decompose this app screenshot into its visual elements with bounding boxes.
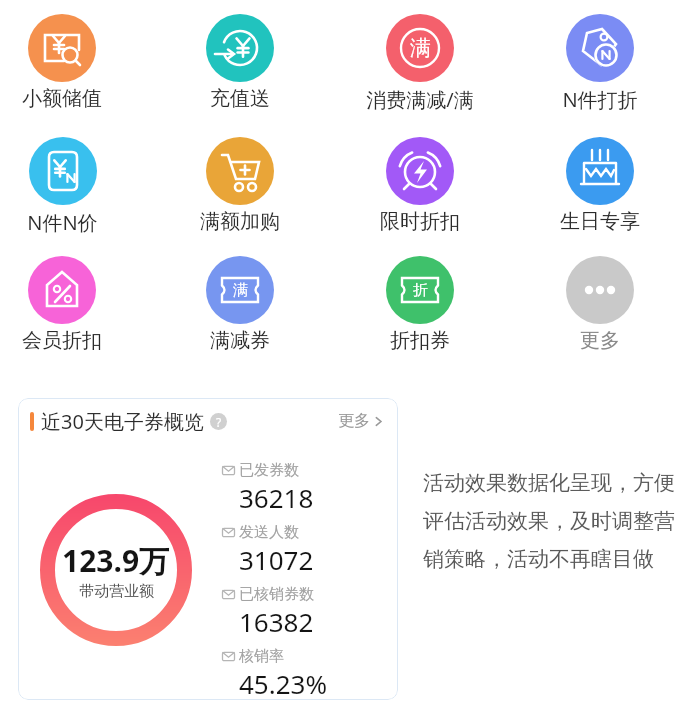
staticText: 生日专享 — [560, 209, 640, 234]
staticText: 充值送 — [210, 86, 270, 111]
button[interactable]: 小额储值 — [4, 14, 120, 114]
staticText: ? — [216, 414, 222, 430]
staticText: 更多 — [338, 411, 370, 431]
staticText: 16382 — [239, 604, 314, 639]
button[interactable]: 折 — [362, 256, 478, 356]
staticText: 折扣券 — [390, 328, 450, 353]
staticText: 123.9万 — [62, 540, 170, 581]
staticText: 消费满减/满送 — [362, 86, 478, 114]
staticText: 满 — [233, 281, 248, 300]
staticText: 折 — [413, 281, 428, 300]
staticText: 小额储值 — [22, 86, 102, 111]
staticText: 会员折扣 — [22, 328, 102, 353]
button[interactable]: 更多 — [338, 411, 384, 431]
button[interactable]: N件N价 — [4, 137, 120, 237]
staticText: 已发券数 — [239, 461, 299, 480]
staticText: 活动效果数据化呈现，方便评估活动效果，及时调整营销策略，活动不再瞎目做 — [423, 470, 675, 573]
staticText: N件N价 — [27, 209, 98, 236]
staticText: N件打折 — [562, 86, 638, 113]
button[interactable]: 满额加购 — [182, 137, 298, 237]
staticText: 发送人数 — [239, 523, 299, 542]
button[interactable]: 限时折扣 — [362, 137, 478, 237]
staticText: 满额加购 — [200, 209, 280, 234]
button[interactable]: 会员折扣 — [4, 256, 120, 356]
button[interactable]: 生日专享 — [542, 137, 658, 237]
staticText: 限时折扣 — [380, 209, 460, 234]
button[interactable]: 帮助 — [210, 413, 227, 430]
staticText: 带动营业额 — [79, 582, 154, 601]
button[interactable]: 更多 — [542, 256, 658, 356]
staticText: 36218 — [239, 480, 314, 515]
staticText: 45.23% — [239, 666, 328, 700]
button[interactable]: 近30天电子券概览 — [18, 398, 398, 700]
staticText: 满 — [410, 35, 431, 61]
staticText: 核销率 — [239, 647, 284, 666]
button[interactable]: N件打折 — [542, 14, 658, 114]
button[interactable]: 满 — [182, 256, 298, 356]
staticText: 近30天电子券概览 — [41, 408, 204, 435]
staticText: 满减券 — [210, 328, 270, 353]
button[interactable]: 满 — [362, 14, 478, 114]
staticText: 31072 — [239, 542, 314, 577]
button[interactable]: 充值送 — [182, 14, 298, 114]
staticText: 已核销券数 — [239, 585, 314, 604]
staticText: 更多 — [580, 328, 620, 353]
